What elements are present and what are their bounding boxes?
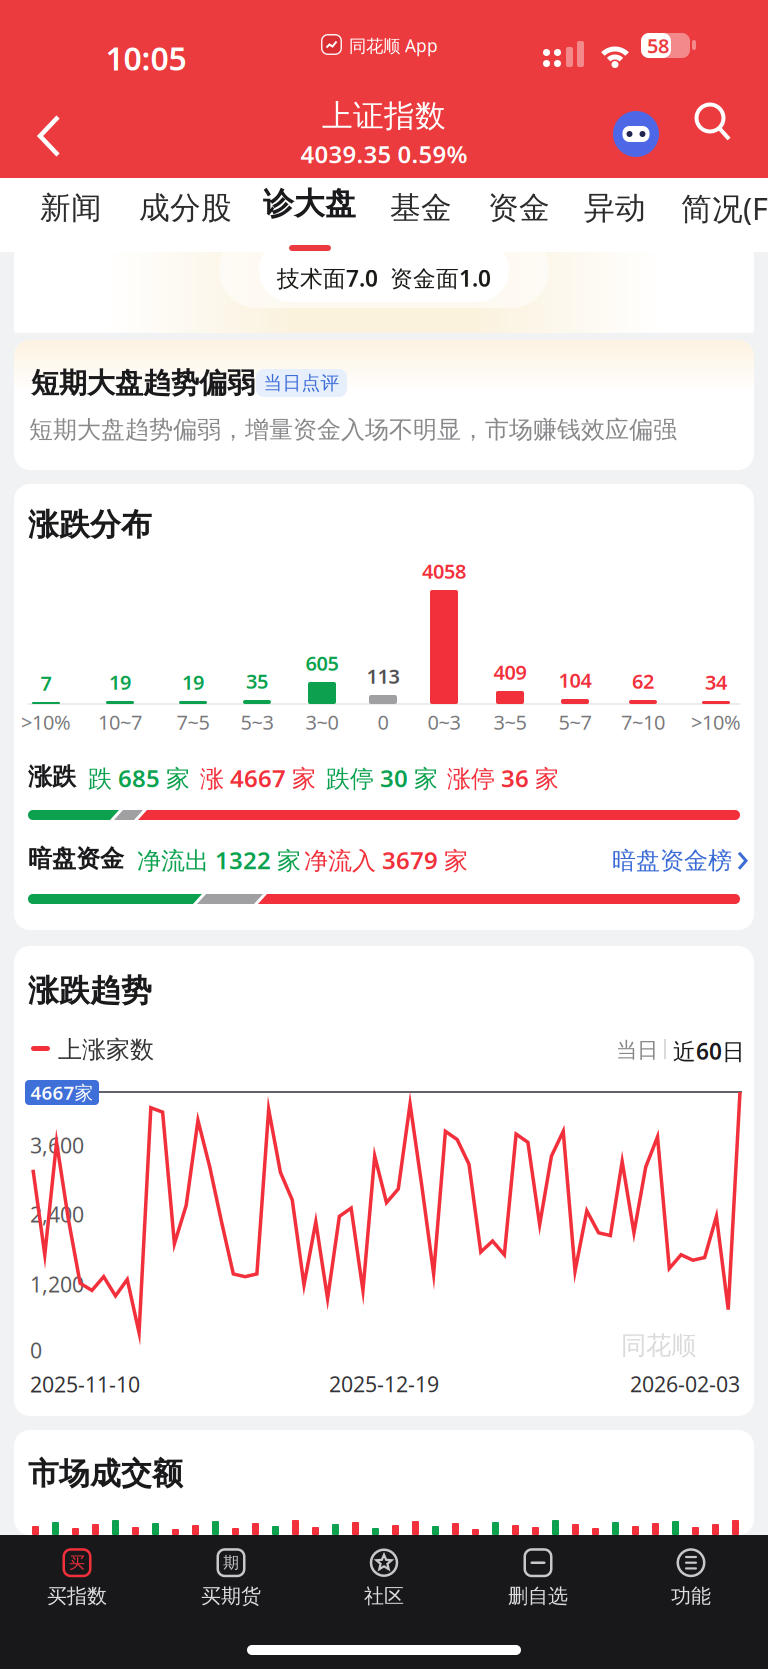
staticText: 短期大盘趋势偏弱，增量资金入场不明显，市场赚钱效应偏强 (29, 415, 677, 444)
button[interactable]: 新闻 (40, 171, 102, 245)
staticText: 资金 (488, 189, 550, 227)
staticText: 4058 (422, 558, 466, 584)
staticText: 涨跌趋势 (28, 972, 152, 1010)
staticText: 104 (558, 667, 591, 693)
staticText: 净流出 1322 家 (137, 844, 301, 876)
staticText: 10~7 (98, 709, 142, 735)
staticText: 7 (40, 670, 51, 696)
staticText: 5~3 (240, 709, 273, 735)
staticText: 功能 (671, 1584, 711, 1608)
staticText: 跌停 30 家 (326, 762, 438, 794)
staticText: 0~3 (427, 709, 460, 735)
staticText: 0 (30, 1336, 42, 1364)
staticText: 市场成交额 (28, 1455, 183, 1493)
staticText: 5~7 (558, 709, 591, 735)
staticText: 暗盘资金榜 (612, 846, 732, 875)
staticText: 暗盘资金 (28, 844, 124, 873)
button[interactable]: 成分股 (139, 171, 232, 245)
staticText: 当日 (616, 1037, 658, 1063)
staticText: 4039.35 0.59% (300, 138, 467, 170)
staticText: 2025-12-19 (329, 1370, 439, 1398)
staticText: 62 (632, 668, 654, 694)
button[interactable]: 简况(F10) (681, 171, 768, 245)
staticText: 简况(F10) (681, 188, 768, 228)
staticText: 涨停 36 家 (447, 762, 559, 794)
staticText: 同花顺 (621, 1330, 696, 1361)
staticText: 409 (493, 659, 526, 685)
staticText: 2025-11-10 (30, 1370, 140, 1398)
staticText: 2,400 (30, 1200, 84, 1228)
staticText: 上证指数 (322, 97, 446, 135)
staticText: 涨跌 (28, 762, 76, 791)
button[interactable]: 期 (154, 1535, 308, 1621)
staticText: 35 (246, 668, 268, 694)
staticText: 10:05 (105, 37, 186, 79)
staticText: 上涨家数 (58, 1035, 154, 1064)
staticText: 0 (377, 709, 388, 735)
staticText: 当日点评 (263, 371, 339, 394)
staticText: 3,600 (30, 1131, 84, 1159)
staticText: 期 (223, 1553, 239, 1573)
staticText: 短期大盘趋势偏弱 (31, 366, 255, 400)
staticText: 删自选 (508, 1584, 568, 1608)
button[interactable]: 买 (0, 1535, 154, 1621)
button[interactable]: 删自选 (461, 1535, 615, 1621)
staticText: 涨 4667 家 (200, 762, 316, 794)
staticText: 基金 (390, 189, 452, 227)
button[interactable]: Search (694, 102, 734, 144)
staticText: 113 (366, 663, 399, 689)
button[interactable]: 社区 (307, 1535, 461, 1621)
staticText: 2026-02-03 (630, 1370, 740, 1398)
staticText: 诊大盘 (263, 185, 356, 223)
staticText: 技术面7.0 资金面1.0 (277, 263, 491, 293)
staticText: 58 (647, 32, 669, 59)
staticText: 买指数 (47, 1584, 107, 1608)
button[interactable]: 资金 (488, 171, 550, 245)
staticText: >10% (21, 709, 71, 735)
staticText: 4667家 (30, 1080, 93, 1105)
staticText: 净流入 3679 家 (304, 844, 468, 876)
button[interactable]: 功能 (614, 1535, 768, 1621)
staticText: 社区 (364, 1584, 404, 1608)
staticText: 涨跌分布 (28, 506, 152, 544)
button[interactable]: 近60日 (673, 1036, 745, 1066)
button[interactable]: Back (34, 112, 74, 160)
staticText: 34 (705, 669, 727, 695)
staticText: 同花顺 App (349, 34, 438, 57)
staticText: 买期货 (201, 1584, 261, 1608)
staticText: 19 (182, 669, 204, 695)
staticText: 19 (109, 669, 131, 695)
staticText: 605 (305, 650, 338, 676)
button[interactable]: 诊大盘 (263, 178, 373, 252)
staticText: 3~5 (493, 709, 526, 735)
button[interactable]: 异动 (584, 171, 646, 245)
button[interactable]: 当日 (616, 1037, 658, 1063)
button[interactable]: AI assistant (612, 110, 660, 158)
staticText: 7~10 (621, 709, 665, 735)
staticText: 新闻 (40, 189, 102, 227)
staticText: 跌 685 家 (88, 762, 190, 794)
button[interactable]: 暗盘资金榜 (612, 846, 749, 875)
button[interactable]: 基金 (390, 171, 452, 245)
staticText: 3~0 (305, 709, 338, 735)
staticText: 成分股 (139, 189, 232, 227)
staticText: >10% (691, 709, 741, 735)
staticText: 1,200 (30, 1270, 84, 1298)
staticText: 买 (69, 1553, 85, 1573)
staticText: 7~5 (176, 709, 209, 735)
staticText: 异动 (584, 189, 646, 227)
staticText: 近60日 (673, 1036, 745, 1066)
